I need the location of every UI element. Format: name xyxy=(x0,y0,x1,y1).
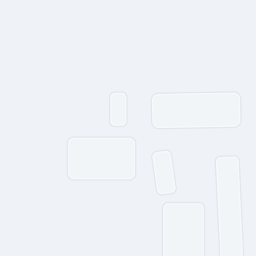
button[interactable]: Card 5 xyxy=(162,202,204,256)
button[interactable]: Card 4 xyxy=(154,150,174,194)
button[interactable]: Card 6 xyxy=(217,156,241,256)
button[interactable]: Card 1 xyxy=(109,92,127,126)
button[interactable]: Card 2 xyxy=(151,92,241,128)
button[interactable]: Card 3 xyxy=(67,137,136,180)
